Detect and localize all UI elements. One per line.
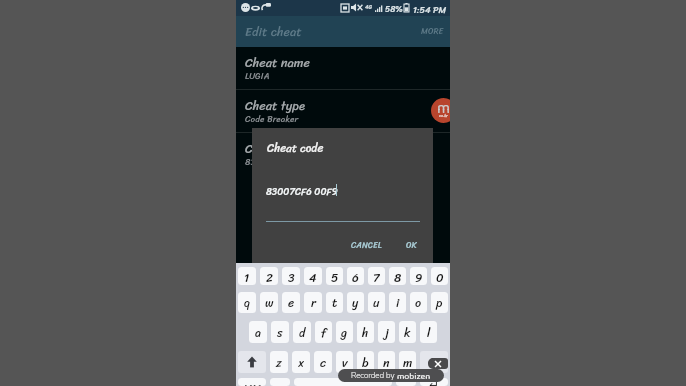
staticText: k [404,322,411,343]
button[interactable]: Shift [238,351,266,373]
button[interactable]: CANCEL [348,235,385,256]
staticText: 3 [288,267,295,285]
button[interactable]: h [357,321,374,343]
staticText: MORE [421,24,444,39]
button[interactable]: x [292,351,310,373]
button[interactable]: . [396,378,416,386]
staticText: 58% [385,2,403,17]
staticText: Cheat code [267,138,324,158]
button[interactable]: 3 [282,267,300,285]
staticText: Recorded by [351,370,397,381]
button[interactable]: MORE [417,19,448,44]
staticText: z [276,352,282,373]
button[interactable]: 8 [389,267,406,285]
staticText: t [332,292,338,313]
staticText: 8 [394,267,402,285]
button[interactable]: j [378,321,395,343]
button[interactable]: !#1 [238,378,266,386]
button[interactable]: b [357,351,374,373]
button[interactable]: 7 [368,267,385,285]
button[interactable]: u [368,292,385,313]
staticText: 83007CF6 00F9 [266,183,338,200]
staticText: 0 [436,267,444,285]
button[interactable]: l [420,321,437,343]
button[interactable]: Close watermark [428,358,448,369]
button[interactable]: z [270,351,288,373]
button[interactable]: 5 [326,267,343,285]
staticText: n [383,352,390,373]
button[interactable]: o [410,292,427,313]
button[interactable]: d [293,321,311,343]
button[interactable]: 2 [260,267,278,285]
staticText: Cheat type [245,95,305,117]
staticText: CANCEL [351,238,382,253]
button[interactable]: 1 [238,267,256,285]
button[interactable]: a [249,321,267,343]
staticText: e [288,292,295,313]
button[interactable]: 0 [431,267,448,285]
staticText: y [352,292,359,313]
button[interactable]: Cheat code [236,133,450,175]
button[interactable]: OK [403,235,420,256]
button[interactable]: ↵ [420,378,448,386]
button[interactable]: y [347,292,364,313]
button[interactable]: 9 [410,267,427,285]
staticText: 83007CF6 00F9 [245,154,312,170]
button[interactable]: k [399,321,416,343]
staticText: x [298,352,305,373]
button[interactable]: Backspace [420,351,448,373]
staticText: 7 [373,267,380,285]
button[interactable]: t [326,292,343,313]
staticText: v [342,352,348,373]
button[interactable]: 6 [347,267,364,285]
staticText: co.kr [439,112,448,119]
button[interactable]: Mobizen recorder [431,98,450,123]
staticText: mobizen [397,369,431,382]
button[interactable]: Cheat type [236,90,450,132]
staticText: 6 [352,267,359,285]
button[interactable] [294,378,392,386]
button[interactable]: m [399,351,416,373]
button[interactable]: 4 [304,267,322,285]
button[interactable]: , [270,378,290,386]
staticText: r [311,292,316,313]
staticText: 1:54 PM [413,2,447,18]
button[interactable]: i [389,292,406,313]
button[interactable]: n [378,351,395,373]
button[interactable]: Cheat name [236,47,450,89]
staticText: m [403,352,413,373]
staticText: Cheat name [245,52,310,74]
button[interactable]: w [260,292,278,313]
staticText: !#1 [243,378,262,386]
button[interactable]: v [336,351,353,373]
button[interactable]: r [304,292,322,313]
staticText: Edit cheat [245,21,302,42]
button[interactable]: q [238,292,256,313]
staticText: c [320,352,326,373]
staticText: h [362,322,369,343]
staticText: 4 [309,267,317,285]
staticText: s [277,322,283,343]
staticText: d [299,322,306,343]
staticText: . [404,378,408,386]
staticText: 9 [415,267,423,285]
button[interactable]: s [271,321,289,343]
button[interactable]: f [315,321,332,343]
button[interactable]: c [314,351,332,373]
staticText: Code Breaker [245,111,299,127]
staticText: 4G [365,2,372,12]
button[interactable]: Edit cheat [242,16,305,47]
staticText: f [321,322,327,343]
staticText: ↵ [429,378,440,386]
staticText: 2 [266,267,273,285]
staticText: Cheat code [245,138,307,160]
staticText: j [385,322,389,343]
button[interactable]: e [282,292,300,313]
staticText: LUGIA [245,68,270,84]
button[interactable]: p [431,292,448,313]
staticText: q [244,292,250,313]
staticText: p [436,292,443,313]
button[interactable]: g [336,321,353,343]
staticText: u [373,292,380,313]
